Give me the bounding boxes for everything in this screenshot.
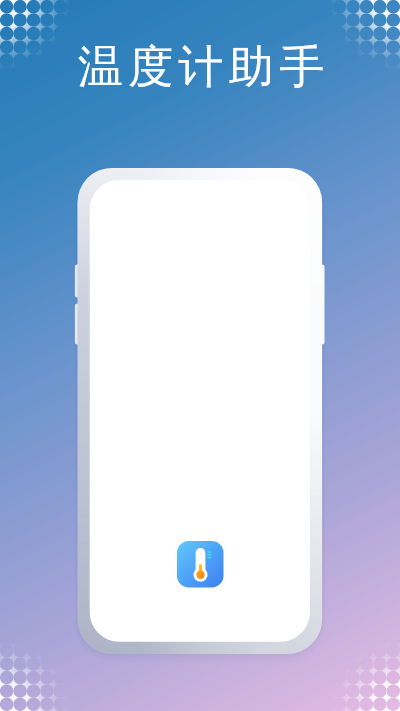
button[interactable]: 打开温度计助手 [177,541,224,588]
